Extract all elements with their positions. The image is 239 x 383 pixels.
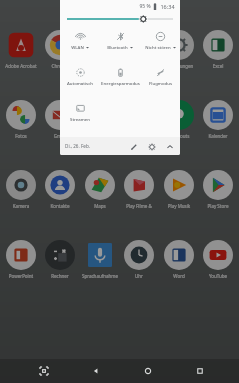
- staticText: Bluetooth: [107, 44, 128, 50]
- button[interactable]: Play Filme & Serien: [120, 170, 158, 209]
- button[interactable]: Fotos: [2, 100, 40, 139]
- button[interactable]: Adobe Acrobat: [2, 30, 40, 69]
- button[interactable]: YouTube: [199, 240, 237, 279]
- button[interactable]: Streamen: [60, 103, 100, 122]
- staticText: Play Filme & Serien: [120, 203, 158, 209]
- staticText: Di., 26. Feb.: [65, 143, 90, 149]
- button[interactable]: Play Store: [199, 170, 237, 209]
- staticText: Word: [160, 273, 198, 279]
- staticText: Gmail: [41, 133, 79, 139]
- button[interactable]: Drive: [81, 30, 119, 69]
- staticText: Streamen: [70, 116, 90, 122]
- button[interactable]: Flugmodus: [140, 67, 180, 86]
- button[interactable]: Chrome: [41, 30, 79, 69]
- staticText: Flugmodus: [149, 80, 172, 86]
- button[interactable]: Kalender: [199, 100, 237, 139]
- staticText: Google: [81, 133, 119, 139]
- button[interactable]: Vollbild: [36, 363, 52, 379]
- button[interactable]: Energiesparmodus: [100, 67, 140, 86]
- staticText: Kalender: [199, 133, 237, 139]
- staticText: Kontakte: [41, 203, 79, 209]
- button[interactable]: WLAN: [60, 31, 100, 50]
- button[interactable]: Bluetooth: [100, 31, 140, 50]
- button[interactable]: Brightness: [67, 12, 173, 26]
- staticText: Kamera: [2, 203, 40, 209]
- button[interactable]: Hangouts: [160, 100, 198, 139]
- staticText: Play Musik: [160, 203, 198, 209]
- button[interactable]: Einstellungen: [146, 141, 157, 152]
- staticText: Einstellungen: [160, 63, 198, 69]
- staticText: 95 %: [139, 3, 151, 10]
- staticText: Rechner: [41, 273, 79, 279]
- staticText: WLAN: [71, 44, 84, 50]
- staticText: Energiesparmodus: [101, 80, 140, 86]
- staticText: PowerPoint: [2, 273, 40, 279]
- button[interactable]: Duo: [120, 30, 158, 69]
- staticText: YouTube: [199, 273, 237, 279]
- staticText: Hangouts: [160, 133, 198, 139]
- staticText: Automatisch drehen: [60, 80, 100, 86]
- staticText: Google Drive: [120, 133, 158, 139]
- staticText: Maps: [81, 203, 119, 209]
- staticText: Uhr: [120, 273, 158, 279]
- button[interactable]: Zurück: [88, 363, 104, 379]
- button[interactable]: Einklappen: [164, 141, 175, 152]
- staticText: Excel: [199, 63, 237, 69]
- button[interactable]: Bearbeiten: [128, 141, 139, 152]
- staticText: Nicht stören: [145, 44, 171, 50]
- button[interactable]: Sprachaufnahme: [81, 240, 119, 279]
- button[interactable]: Excel: [199, 30, 237, 69]
- button[interactable]: Play Musik: [160, 170, 198, 209]
- button[interactable]: Kamera: [2, 170, 40, 209]
- button[interactable]: Übersicht: [192, 363, 208, 379]
- staticText: Chrome: [41, 63, 79, 69]
- staticText: Play Store: [199, 203, 237, 209]
- button[interactable]: Startbildschirm: [140, 363, 156, 379]
- button[interactable]: Google: [81, 100, 119, 139]
- staticText: Fotos: [2, 133, 40, 139]
- staticText: 16:34: [160, 3, 175, 10]
- button[interactable]: PowerPoint: [2, 240, 40, 279]
- button[interactable]: Word: [160, 240, 198, 279]
- button[interactable]: Gmail: [41, 100, 79, 139]
- button[interactable]: Rechner: [41, 240, 79, 279]
- staticText: Duo: [120, 63, 158, 69]
- button[interactable]: Kontakte: [41, 170, 79, 209]
- button[interactable]: Automatisch drehen: [60, 67, 100, 86]
- button[interactable]: Maps: [81, 170, 119, 209]
- button[interactable]: Uhr: [120, 240, 158, 279]
- button[interactable]: Nicht stören: [140, 31, 180, 50]
- staticText: Adobe Acrobat: [2, 63, 40, 69]
- button[interactable]: Einstellungen: [160, 30, 198, 69]
- staticText: Sprachaufnahme: [81, 273, 119, 279]
